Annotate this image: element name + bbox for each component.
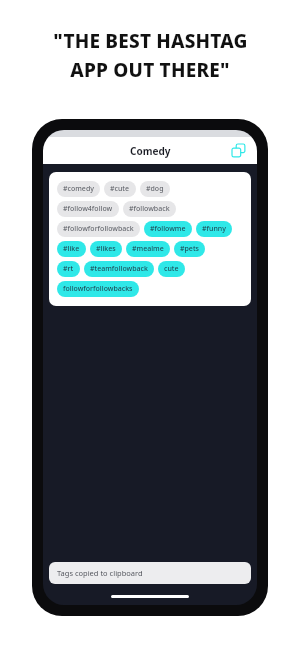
button[interactable]: Copy tags <box>229 141 249 161</box>
staticText: #follow4follow <box>63 204 113 214</box>
staticText: followforfollowbacks <box>63 284 133 294</box>
staticText: #dog <box>146 184 164 194</box>
button[interactable]: #funny <box>196 221 232 237</box>
staticText: #funny <box>202 224 226 234</box>
staticText: #pets <box>180 244 199 254</box>
button[interactable]: #followback <box>123 201 176 217</box>
staticText: #followback <box>129 204 170 214</box>
staticText: Comedy <box>130 144 171 158</box>
staticText: #teamfollowback <box>90 264 148 274</box>
button[interactable]: #cute <box>104 181 136 197</box>
staticText: APP OUT THERE" <box>70 57 230 83</box>
button[interactable]: #like <box>57 241 86 257</box>
button[interactable]: #pets <box>174 241 205 257</box>
button[interactable]: #rt <box>57 261 80 277</box>
button[interactable]: followforfollowbacks <box>57 281 139 297</box>
staticText: #like <box>63 244 80 254</box>
button[interactable]: #mealme <box>126 241 170 257</box>
staticText: #followforfollowback <box>63 224 134 234</box>
staticText: cute <box>164 264 179 274</box>
staticText: #cute <box>110 184 130 194</box>
staticText: #likes <box>96 244 116 254</box>
staticText: #rt <box>63 264 74 274</box>
button[interactable]: #dog <box>140 181 170 197</box>
button[interactable]: #follow4follow <box>57 201 119 217</box>
staticText: #followme <box>150 224 186 234</box>
staticText: "THE BEST HASHTAG <box>53 28 248 54</box>
button[interactable]: #followforfollowback <box>57 221 140 237</box>
button[interactable]: #comedy <box>57 181 100 197</box>
button[interactable]: #followme <box>144 221 192 237</box>
button[interactable]: Tags copied to clipboard <box>49 562 251 584</box>
staticText: Tags copied to clipboard <box>57 568 143 578</box>
button[interactable]: #likes <box>90 241 122 257</box>
staticText: #mealme <box>132 244 164 254</box>
button[interactable]: #teamfollowback <box>84 261 154 277</box>
staticText: #comedy <box>63 184 94 194</box>
button[interactable]: cute <box>158 261 185 277</box>
